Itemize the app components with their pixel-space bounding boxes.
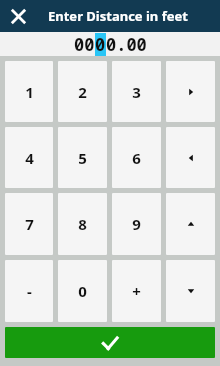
other: Move left xyxy=(166,127,215,188)
staticText: 8 xyxy=(78,214,87,234)
staticText: 5 xyxy=(78,148,87,168)
staticText: + xyxy=(132,281,141,301)
staticText: 00 xyxy=(74,33,95,56)
button[interactable]: 8 xyxy=(58,193,107,255)
button[interactable]: 3 xyxy=(112,61,161,122)
button[interactable] xyxy=(166,193,215,255)
button[interactable]: Close xyxy=(4,2,32,30)
staticText: 3 xyxy=(132,82,141,102)
staticText: 0 xyxy=(95,33,106,56)
button[interactable] xyxy=(166,61,215,122)
staticText: 2 xyxy=(78,82,87,102)
button[interactable]: Confirm xyxy=(5,327,215,358)
staticText: 4 xyxy=(25,148,34,168)
staticText: 9 xyxy=(132,214,141,234)
button[interactable]: 1 xyxy=(5,61,53,122)
staticText: 7 xyxy=(25,214,34,234)
other: Increase xyxy=(166,193,215,255)
button[interactable]: 6 xyxy=(112,127,161,188)
button[interactable]: + xyxy=(112,260,161,322)
staticText: Enter Distance in feet xyxy=(48,7,188,25)
button[interactable] xyxy=(166,260,215,322)
button[interactable]: 5 xyxy=(58,127,107,188)
other: Decrease xyxy=(166,260,215,322)
staticText: 6 xyxy=(132,148,141,168)
button[interactable]: 7 xyxy=(5,193,53,255)
button[interactable]: 2 xyxy=(58,61,107,122)
button[interactable] xyxy=(166,127,215,188)
staticText: 0.00 xyxy=(106,33,147,56)
staticText: 1 xyxy=(25,82,34,102)
staticText: 0 xyxy=(78,281,87,301)
button[interactable]: - xyxy=(5,260,53,322)
button[interactable]: 4 xyxy=(5,127,53,188)
button[interactable]: 9 xyxy=(112,193,161,255)
staticText: - xyxy=(27,281,32,301)
other: Move right xyxy=(166,61,215,122)
button[interactable]: 0 xyxy=(58,260,107,322)
